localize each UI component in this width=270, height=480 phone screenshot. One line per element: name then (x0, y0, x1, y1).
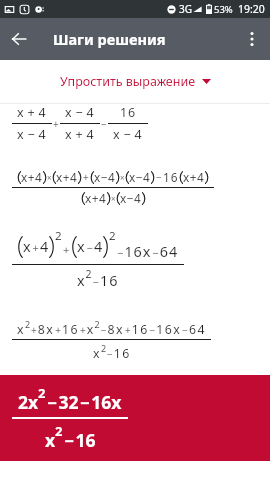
staticText: 2 (55, 228, 62, 244)
staticText: Упростить выражение (60, 73, 196, 90)
staticText: x − 4 (77, 237, 103, 257)
staticText: x2 + 8x + 16 + x2 − 8x + 16 − 16x − 64 (17, 318, 206, 337)
staticText: × (47, 172, 52, 183)
button[interactable]: 2x2 − 32 − 16x (0, 375, 270, 461)
staticText: x2 − 16 (77, 267, 119, 290)
staticText: 53% (214, 3, 233, 16)
staticText: x+4 (85, 190, 107, 206)
staticText: x − 4 (17, 126, 47, 143)
staticText: − 16x − 64 (116, 242, 179, 262)
staticText: 2x2 − 32 − 16x (18, 384, 122, 414)
staticText: x − 4 (65, 104, 95, 121)
staticText: 3G (179, 2, 192, 16)
staticText: × (120, 172, 125, 183)
staticText: 2 (109, 228, 116, 244)
staticText: × (111, 193, 116, 204)
staticText: x+4 (21, 169, 43, 185)
staticText: x + 4 (17, 104, 47, 121)
button[interactable]: More options (234, 21, 270, 57)
staticText: x+4 (56, 169, 78, 185)
button[interactable]: x + 4 (12, 228, 184, 290)
staticText: + (52, 117, 60, 131)
staticText: x + 4 (23, 237, 49, 257)
staticText: x − 4 (113, 126, 143, 143)
staticText: 16 (163, 169, 179, 185)
staticText: − (100, 117, 108, 131)
staticText: + (82, 170, 90, 184)
staticText: x + 4 (65, 126, 95, 143)
staticText: x2 − 16 (45, 422, 96, 452)
staticText: + (62, 242, 71, 257)
staticText: − (155, 170, 163, 184)
staticText: 16 (120, 104, 137, 121)
staticText: x2 − 16 (93, 342, 131, 361)
button[interactable]: x+4 (12, 169, 214, 206)
button[interactable]: x + 4 (12, 104, 148, 143)
staticText: 19:20 (238, 2, 265, 16)
button[interactable]: x2 + 8x + 16 + x2 − 8x + 16 − 16x − 64 (12, 318, 211, 361)
staticText: x+4 (183, 169, 205, 185)
button[interactable]: Back (0, 20, 38, 58)
button[interactable]: Упростить выражение (0, 60, 270, 103)
staticText: Шаги решения (53, 29, 166, 49)
staticText: x−4 (120, 190, 142, 206)
staticText: x−4 (94, 169, 116, 185)
staticText: x−4 (129, 169, 151, 185)
